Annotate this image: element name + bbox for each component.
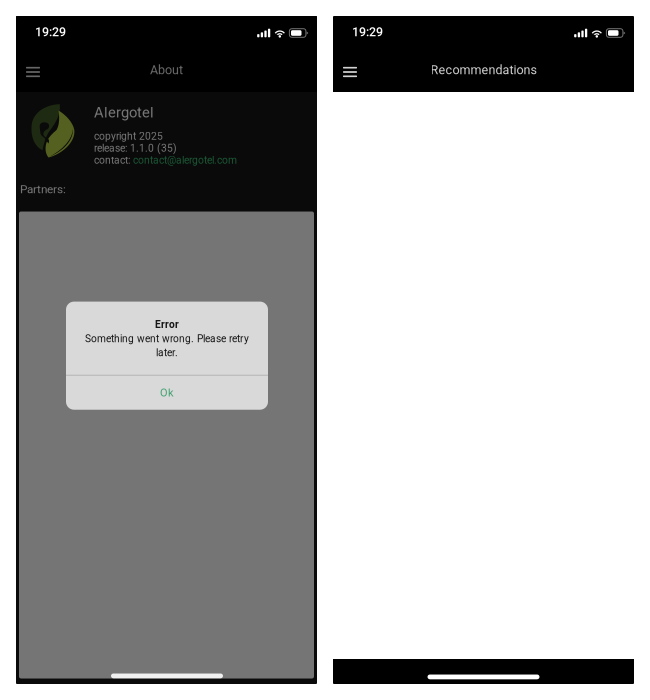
staticText: Recommendations xyxy=(430,63,536,77)
staticText: copyright 2025 xyxy=(94,130,163,142)
staticText: 19:29 xyxy=(352,25,383,39)
staticText: Ok xyxy=(160,386,174,399)
button[interactable]: Ok xyxy=(66,376,268,410)
staticText: later. xyxy=(156,347,178,359)
staticText: 19:29 xyxy=(35,25,66,39)
button[interactable]: Menu xyxy=(18,46,48,94)
staticText: contact@alergotel.com xyxy=(133,154,237,166)
staticText: Error xyxy=(155,319,179,330)
staticText: release: 1.1.0 (35) xyxy=(94,142,177,154)
staticText: Alergotel xyxy=(94,104,154,121)
staticText: Something went wrong. Please retry xyxy=(85,333,249,345)
staticText: About xyxy=(150,63,183,77)
button[interactable]: Menu xyxy=(335,46,365,94)
staticText: contact: xyxy=(94,154,133,166)
staticText: Partners: xyxy=(20,182,66,196)
